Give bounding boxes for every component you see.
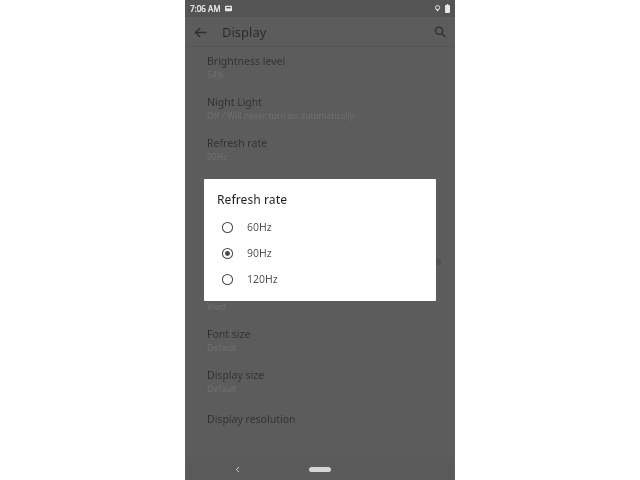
button[interactable]: 120Hz [204, 266, 436, 292]
staticText: Default [207, 342, 237, 354]
staticText: Display [222, 23, 267, 41]
staticText: Font size [207, 327, 251, 341]
staticText: Auto-rotate screen [207, 255, 299, 269]
staticText: Display size [207, 368, 265, 382]
button[interactable]: Auto-rotate screen [185, 245, 455, 279]
button[interactable]: Back [229, 461, 245, 477]
staticText: Night Light [207, 95, 263, 109]
staticText: Refresh rate [207, 136, 268, 150]
staticText: Refresh rate [217, 191, 288, 207]
staticText: 90Hz [207, 151, 228, 163]
button[interactable]: Font size [185, 320, 455, 361]
staticText: Lock screen [207, 221, 265, 235]
staticText: On [207, 192, 219, 204]
staticText: Display resolution [207, 412, 296, 426]
button[interactable]: 60Hz [204, 214, 436, 240]
button[interactable]: Night Light [185, 88, 455, 129]
staticText: Default [207, 383, 237, 395]
button[interactable]: 90Hz [204, 240, 436, 266]
button[interactable]: Back [185, 17, 215, 47]
button[interactable]: Colors [185, 279, 455, 320]
staticText: Brightness level [207, 54, 286, 68]
button[interactable]: Display size [185, 361, 455, 402]
button[interactable]: Adaptive brightness [185, 170, 455, 211]
button[interactable]: Refresh rate [185, 129, 455, 170]
button[interactable]: Brightness level [185, 47, 455, 88]
button[interactable]: Auto-rotate screen toggle [419, 255, 441, 269]
staticText: 7:06 AM [190, 3, 221, 14]
staticText: 54% [207, 69, 224, 81]
staticText: Off / Will never turn on automatically [207, 110, 355, 122]
button[interactable]: Lock screen [185, 211, 455, 245]
staticText: 60Hz [247, 220, 272, 234]
button[interactable]: Display resolution [185, 402, 455, 436]
staticText: 120Hz [247, 272, 278, 286]
staticText: Adaptive brightness [207, 177, 306, 191]
staticText: 90Hz [247, 246, 272, 260]
staticText: Vivid [207, 301, 227, 313]
button[interactable]: Home [307, 462, 333, 476]
button[interactable]: Search [425, 17, 455, 47]
